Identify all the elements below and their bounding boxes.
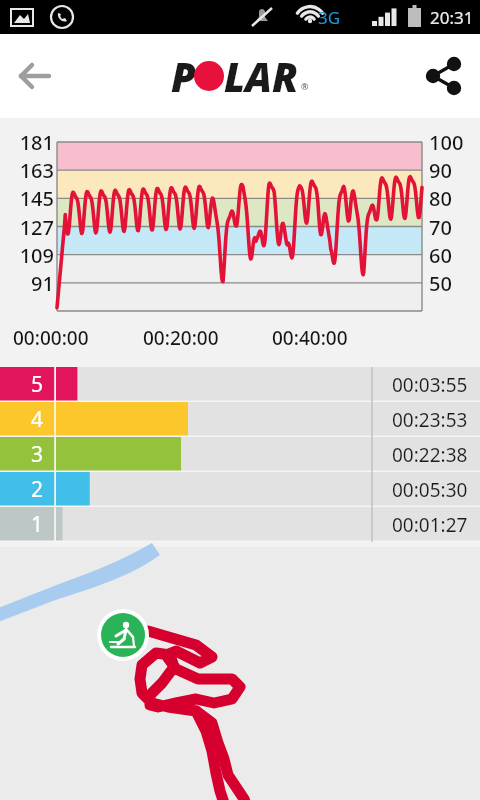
staticText: 00:22:38 <box>392 442 468 468</box>
staticText: 127 <box>8 214 54 241</box>
staticText: 50 <box>429 270 452 297</box>
staticText: 109 <box>8 242 54 269</box>
button[interactable]: 5 <box>0 367 480 402</box>
staticText: 90 <box>429 157 452 184</box>
staticText: 5 <box>0 370 43 399</box>
staticText: 20:31 <box>430 6 474 29</box>
button[interactable]: 4 <box>0 402 480 437</box>
staticText: 00:03:55 <box>392 372 468 398</box>
button[interactable]: 2 <box>0 472 480 507</box>
staticText: 163 <box>8 157 54 184</box>
staticText: 1 <box>0 510 43 539</box>
staticText: 181 <box>8 129 54 156</box>
button[interactable]: 3 <box>0 437 480 472</box>
staticText: 00:40:00 <box>272 325 348 351</box>
staticText: 60 <box>429 242 452 269</box>
staticText: 4 <box>0 405 43 434</box>
staticText: 145 <box>8 185 54 212</box>
staticText: P <box>171 49 196 103</box>
staticText: 00:01:27 <box>392 512 468 538</box>
staticText: 70 <box>429 214 452 241</box>
staticText: 00:05:30 <box>392 477 468 503</box>
staticText: 3 <box>0 440 43 469</box>
staticText: 00:23:53 <box>392 407 468 433</box>
staticText: 80 <box>429 185 452 212</box>
staticText: 91 <box>8 270 54 297</box>
staticText: 2 <box>0 475 43 504</box>
staticText: 00:20:00 <box>143 325 219 351</box>
staticText: LAR <box>224 49 299 103</box>
button[interactable] <box>0 547 480 800</box>
button[interactable]: 1 <box>0 507 480 542</box>
staticText: ® <box>301 80 309 92</box>
staticText: 00:00:00 <box>13 325 89 351</box>
staticText: 100 <box>429 129 464 156</box>
button[interactable]: Share <box>408 40 480 112</box>
button[interactable]: Back <box>0 41 70 111</box>
staticText: 3G <box>318 6 341 29</box>
